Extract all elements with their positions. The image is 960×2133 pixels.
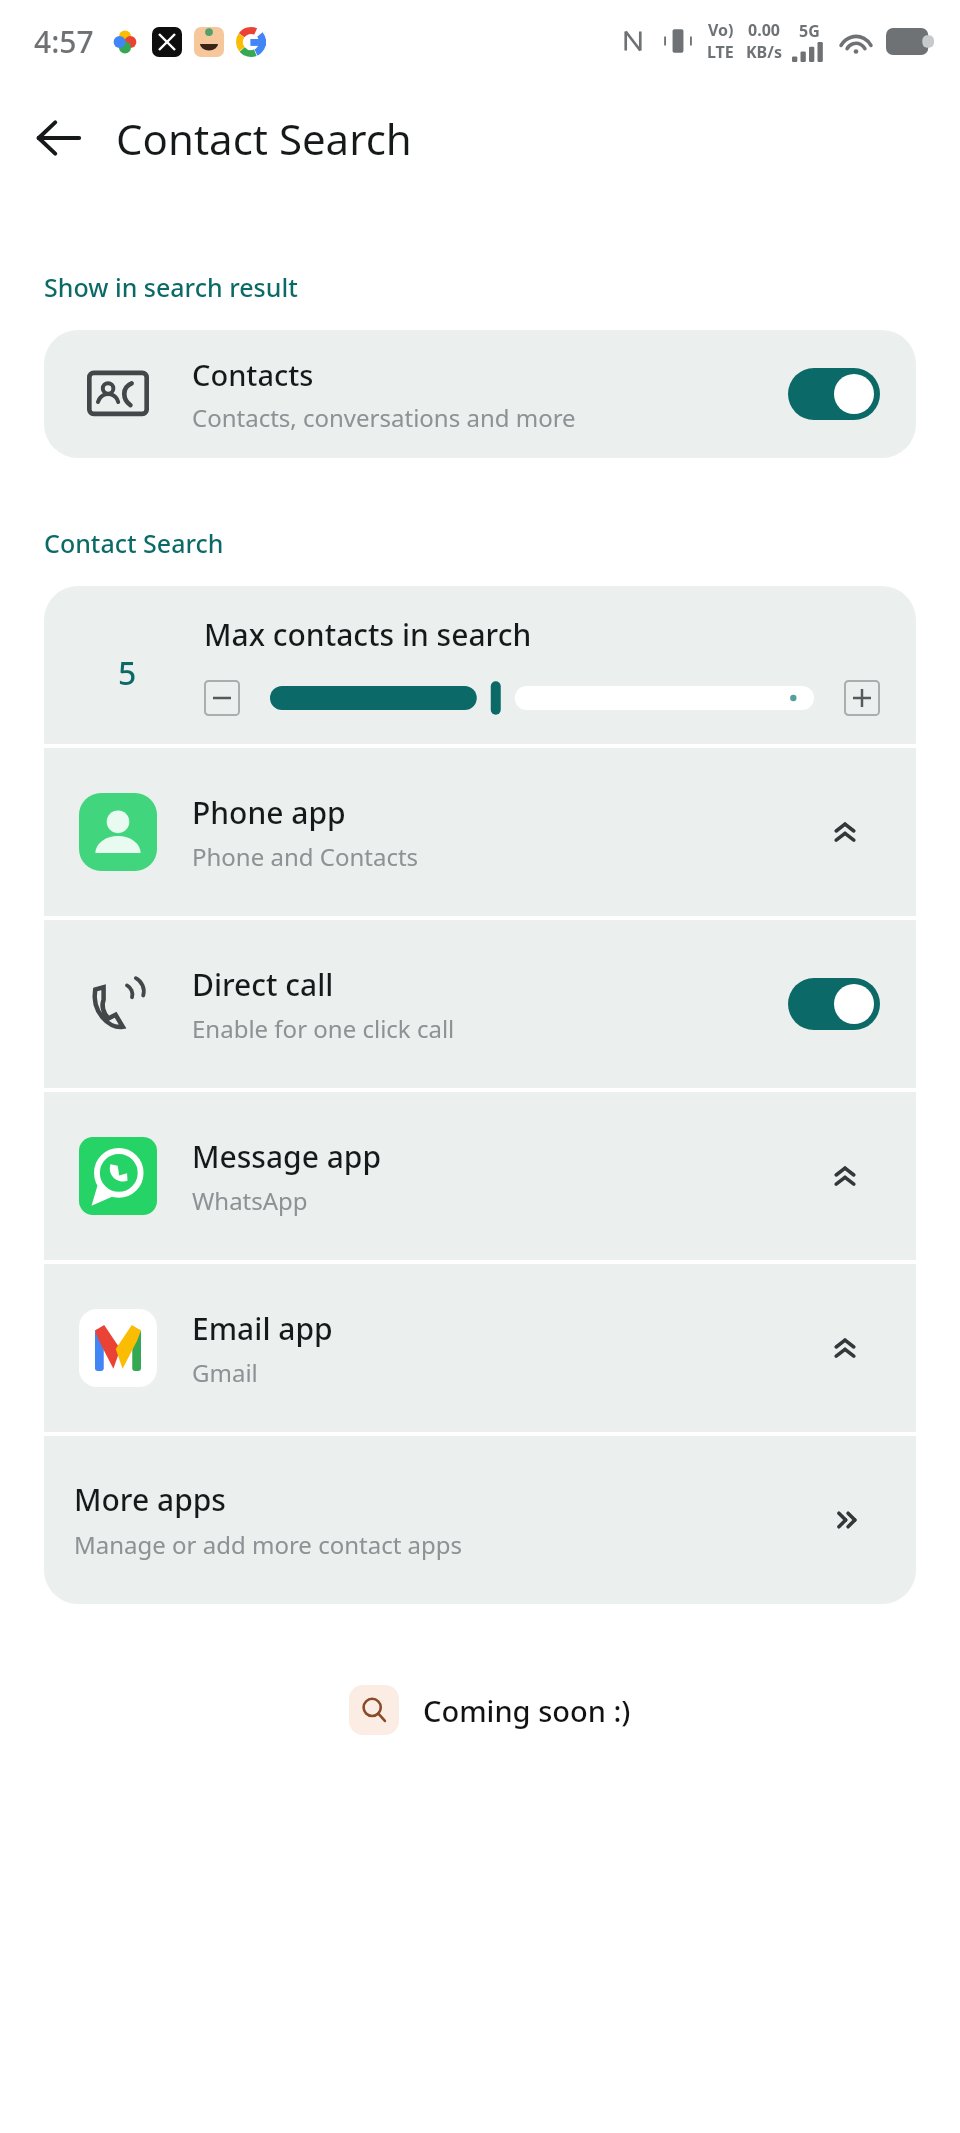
button[interactable]: Phone app: [44, 748, 916, 916]
staticText: 0.00: [748, 19, 780, 41]
button[interactable]: More apps: [44, 1436, 916, 1604]
staticText: 5: [118, 651, 137, 695]
staticText: More apps: [74, 1479, 226, 1520]
button[interactable]: Expand: [818, 805, 872, 859]
button[interactable]: Decrease: [204, 680, 240, 716]
button[interactable]: Toggle: [788, 368, 880, 420]
staticText: Contacts, conversations and more: [192, 401, 576, 434]
button[interactable]: 5: [44, 586, 916, 744]
button[interactable]: Expand: [818, 1321, 872, 1375]
button[interactable]: Increase: [844, 680, 880, 716]
button[interactable]: Contacts: [44, 330, 916, 458]
staticText: Enable for one click call: [192, 1012, 455, 1045]
staticText: Contact Search: [116, 110, 412, 167]
staticText: Phone and Contacts: [192, 840, 419, 873]
staticText: Show in search result: [44, 270, 298, 304]
staticText: Contact Search: [44, 526, 224, 560]
staticText: 5G: [799, 20, 820, 42]
button[interactable]: Message app: [44, 1092, 916, 1260]
staticText: Phone app: [192, 792, 346, 833]
staticText: 4:57: [34, 21, 94, 62]
button[interactable]: Coming soon :): [321, 1656, 639, 1764]
staticText: Vo): [708, 19, 734, 41]
staticText: Manage or add more contact apps: [74, 1528, 463, 1561]
button[interactable]: Back: [18, 98, 98, 178]
staticText: Max contacts in search: [204, 614, 532, 655]
staticText: Direct call: [192, 964, 334, 1005]
button[interactable]: Toggle: [788, 978, 880, 1030]
button[interactable]: More apps: [818, 1493, 872, 1547]
staticText: Email app: [192, 1308, 333, 1349]
staticText: Contacts: [192, 355, 314, 394]
staticText: Coming soon :): [423, 1691, 631, 1730]
staticText: KB/s: [746, 41, 782, 63]
staticText: Gmail: [192, 1356, 258, 1389]
staticText: Message app: [192, 1136, 382, 1177]
button[interactable]: Email app: [44, 1264, 916, 1432]
button[interactable]: Expand: [818, 1149, 872, 1203]
button[interactable]: Direct call: [44, 920, 916, 1088]
staticText: WhatsApp: [192, 1184, 308, 1217]
staticText: LTE: [707, 41, 734, 63]
